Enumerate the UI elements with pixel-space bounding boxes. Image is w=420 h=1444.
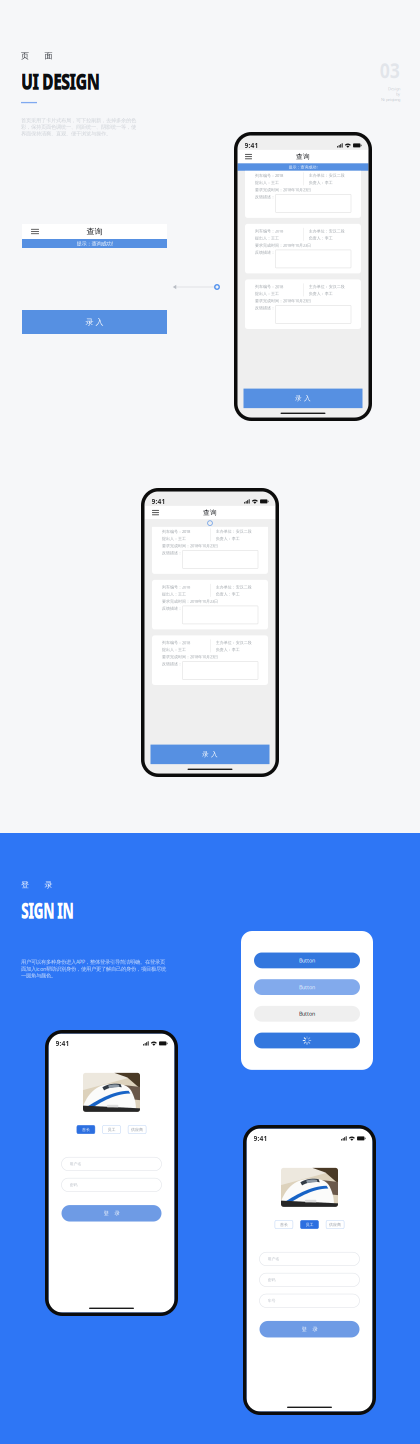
staticText: 登 录 [301,1326,317,1332]
button[interactable]: 登 录 [61,1205,161,1222]
staticText: 主办单位：安汉二段 [216,640,252,645]
staticText: 反馈描述： [162,661,182,666]
button[interactable]: Loading [254,1033,360,1048]
staticText: 员工 [305,1222,313,1227]
staticText: 主办单位：安汉二段 [216,529,252,534]
staticText: 负责人：李工 [216,647,240,652]
staticText: UI DESIGN [21,66,134,96]
staticText: 负责人：李工 [216,592,240,597]
staticText: 负责人：李工 [309,291,333,296]
button[interactable]: 员工 [102,1125,120,1134]
staticText: 提出人：王工 [162,592,186,597]
button[interactable]: 录 入 [22,310,167,334]
staticText: 主办单位：安汉二段 [309,229,345,233]
staticText: 录 入 [85,317,103,327]
staticText: 查询 [296,152,310,161]
staticText: 查询 [86,227,102,236]
button[interactable]: 首长 [77,1125,95,1134]
button[interactable]: Button [254,952,360,968]
staticText: 提示：查询成功! [288,164,317,170]
staticText: 提示：查询成功! [76,240,112,247]
staticText: 主办单位：安汉二段 [309,284,345,289]
button[interactable]: 供应商 [326,1220,344,1229]
button[interactable]: 录 入 [150,745,269,764]
staticText: 列车编号：2018 [162,640,190,645]
staticText: 9:41 [244,141,258,150]
button[interactable]: 供应商 [128,1125,146,1134]
button[interactable]: 录 入 [243,389,362,408]
staticText: 密码 [69,1182,77,1187]
staticText: 登 录 [21,880,52,890]
staticText: 要求完成时间：2018年10月23日 [162,654,218,659]
staticText: 登 录 [103,1210,119,1217]
staticText: 负责人：李工 [216,536,240,541]
staticText: 列车编号：2018 [255,228,283,234]
staticText: 主办单位：安汉二段 [216,585,252,589]
staticText: 要求完成时间：2018年10月23日 [255,243,311,248]
staticText: 要求完成时间：2018年10月23日 [162,599,218,604]
button[interactable]: 员工 [300,1220,318,1229]
button[interactable]: 登 录 [259,1321,359,1337]
staticText: 首长 [280,1222,288,1227]
staticText: 要求完成时间：2018年10月23日 [162,543,218,548]
staticText: 供应商 [131,1127,143,1132]
staticText: 9:41 [253,1134,267,1143]
staticText: Design [388,86,400,91]
staticText: 要求完成时间：2018年10月23日 [255,187,311,192]
staticText: Button [299,984,315,991]
staticText: 列车编号：2018 [255,173,283,178]
staticText: 提出人：王工 [162,536,186,541]
staticText: 员工 [107,1127,115,1132]
staticText: 反馈描述： [162,606,182,611]
staticText: 录 入 [295,394,311,402]
staticText: 反馈描述： [255,250,275,255]
staticText: Button [299,957,315,964]
staticText: 提出人：王工 [162,647,186,652]
staticText: 反馈描述： [255,194,275,199]
button[interactable]: Menu [149,508,161,518]
staticText: 页 面 [21,51,52,61]
button[interactable]: Button [254,1006,360,1022]
staticText: 反馈描述： [162,550,182,555]
button[interactable]: 首长 [275,1220,293,1229]
staticText: 负责人：李工 [309,180,333,185]
staticText: 提出人：王工 [255,180,279,185]
staticText: 负责人：李工 [309,236,333,241]
staticText: 9:41 [151,497,165,506]
staticText: 首长 [82,1127,90,1132]
staticText: 列车编号：2018 [162,584,190,590]
staticText: 查询 [203,508,217,517]
staticText: 9:41 [55,1039,69,1048]
staticText: 03 [374,55,400,85]
button[interactable]: Menu [242,152,254,162]
staticText: 车号 [267,1298,275,1303]
staticText: 提出人：王工 [255,291,279,296]
staticText: 要求完成时间：2018年10月23日 [255,298,311,303]
staticText: 供应商 [329,1222,341,1227]
staticText: SIGN IN [21,895,109,925]
staticText: 首页采用了卡片式布局，可下拉刷新，去掉多余的色彩，保持页面色调统一、间距统一、阴… [21,117,136,137]
staticText: by [396,91,400,97]
staticText: 主办单位：安汉二段 [309,173,345,178]
staticText: 用户名 [69,1161,81,1166]
staticText: 密码 [267,1277,275,1282]
staticText: Button [299,1010,315,1017]
staticText: 用户可以有多种身份进入APP，整体登录引导简洁明确。在登录页面加入icon帮助识… [21,958,166,979]
staticText: 列车编号：2018 [162,529,190,534]
staticText: 提出人：王工 [255,236,279,241]
staticText: 反馈描述： [255,305,275,310]
staticText: 录 入 [202,750,218,758]
staticText: Ni peiqiang [381,97,400,102]
button[interactable]: Button [254,979,360,995]
staticText: 列车编号：2018 [255,284,283,289]
staticText: 用户名 [267,1256,279,1261]
